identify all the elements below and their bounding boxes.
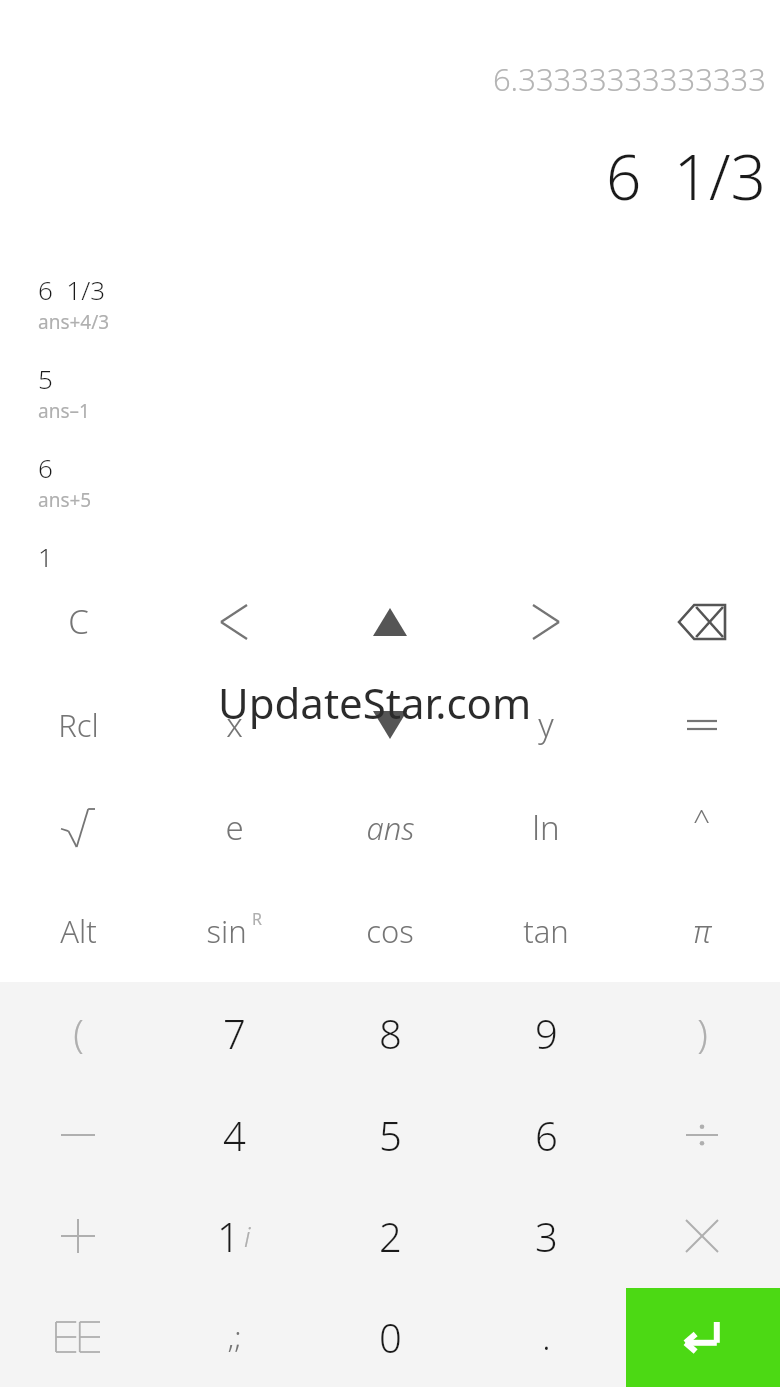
staticText: i bbox=[244, 1217, 251, 1255]
button[interactable]: e bbox=[156, 776, 312, 879]
button[interactable]: 8 bbox=[312, 982, 468, 1084]
button[interactable]: 0 bbox=[312, 1286, 468, 1387]
button[interactable]: cos bbox=[312, 879, 468, 982]
button[interactable]: 7 bbox=[156, 982, 312, 1084]
button[interactable]: Open parenthesis bbox=[0, 982, 156, 1084]
button[interactable]: Close parenthesis bbox=[624, 982, 780, 1084]
staticText: ( bbox=[73, 1007, 84, 1059]
button[interactable]: Plus bbox=[0, 1185, 156, 1286]
button[interactable]: π bbox=[624, 879, 780, 982]
staticText: 6 bbox=[38, 450, 53, 485]
staticText: 2 bbox=[379, 1209, 402, 1263]
staticText: 6.33333333333333 bbox=[492, 58, 766, 100]
staticText: ln bbox=[532, 805, 560, 850]
button[interactable]: Scroll up bbox=[312, 570, 468, 673]
staticText: y bbox=[538, 702, 554, 747]
button[interactable]: Multiply bbox=[624, 1185, 780, 1286]
button[interactable]: 5 bbox=[312, 1084, 468, 1185]
button[interactable]: Scroll down bbox=[312, 673, 468, 776]
staticText: ) bbox=[697, 1007, 708, 1059]
button[interactable]: Enter bbox=[626, 1288, 780, 1387]
staticText: 4 bbox=[223, 1108, 246, 1162]
button[interactable]: 3 bbox=[468, 1185, 624, 1286]
staticText: 6 bbox=[535, 1108, 558, 1162]
button[interactable]: y bbox=[468, 673, 624, 776]
staticText: ans bbox=[366, 807, 415, 849]
button[interactable]: ans bbox=[312, 776, 468, 879]
button[interactable]: 6 bbox=[0, 450, 780, 513]
staticText: ans–1 bbox=[38, 398, 90, 424]
staticText: 8 bbox=[379, 1006, 402, 1060]
button[interactable]: 4 bbox=[156, 1084, 312, 1185]
button[interactable]: Clear bbox=[0, 570, 156, 673]
button[interactable]: 9 bbox=[468, 982, 624, 1084]
button[interactable]: Exponent bbox=[0, 1286, 156, 1387]
staticText: 3 bbox=[535, 1209, 558, 1263]
button[interactable]: Minus bbox=[0, 1084, 156, 1185]
staticText: ans+4/3 bbox=[38, 309, 110, 335]
button[interactable]: Power bbox=[624, 776, 780, 879]
staticText: ^ bbox=[693, 799, 711, 840]
button[interactable]: 6 1/3 bbox=[0, 272, 780, 335]
staticText: e bbox=[225, 805, 244, 850]
staticText: 9 bbox=[535, 1006, 558, 1060]
staticText: 6 1/3 bbox=[606, 134, 766, 218]
staticText: . bbox=[542, 1314, 551, 1360]
staticText: cos bbox=[366, 910, 414, 952]
staticText: 7 bbox=[223, 1006, 246, 1060]
button[interactable]: sin bbox=[156, 879, 312, 982]
button[interactable]: 2 bbox=[312, 1185, 468, 1286]
staticText: 1 bbox=[217, 1209, 240, 1263]
button[interactable]: tan bbox=[468, 879, 624, 982]
button[interactable]: Backspace bbox=[624, 570, 780, 673]
staticText: 5 bbox=[379, 1108, 402, 1162]
button[interactable]: 1 bbox=[0, 539, 780, 570]
staticText: Rcl bbox=[58, 704, 99, 746]
staticText: UpdateStar.com bbox=[218, 674, 532, 731]
button[interactable]: Equals bbox=[624, 673, 780, 776]
staticText: 1 bbox=[38, 539, 53, 570]
button[interactable]: 5 bbox=[0, 361, 780, 424]
button[interactable]: 6 bbox=[468, 1084, 624, 1185]
staticText: tan bbox=[523, 910, 569, 952]
staticText: 0 bbox=[379, 1310, 402, 1364]
button[interactable]: Decimal point bbox=[468, 1286, 624, 1387]
staticText: 6 1/3 bbox=[38, 272, 106, 307]
button[interactable]: Alt bbox=[0, 879, 156, 982]
button[interactable]: Divide bbox=[624, 1084, 780, 1185]
staticText: ans+5 bbox=[38, 487, 92, 513]
button[interactable]: ,; bbox=[156, 1286, 312, 1387]
staticText: sin bbox=[206, 910, 247, 952]
button[interactable]: Recall bbox=[0, 673, 156, 776]
button[interactable]: Move right bbox=[468, 570, 624, 673]
button[interactable]: ln bbox=[468, 776, 624, 879]
staticText: x bbox=[226, 702, 243, 747]
staticText: π bbox=[693, 910, 711, 952]
button[interactable]: Move left bbox=[156, 570, 312, 673]
staticText: C bbox=[68, 599, 89, 644]
staticText: ,; bbox=[227, 1316, 242, 1357]
staticText: Alt bbox=[60, 910, 97, 952]
button[interactable]: Square root bbox=[0, 776, 156, 879]
button[interactable]: 1 bbox=[156, 1185, 312, 1286]
staticText: R bbox=[252, 908, 262, 930]
staticText: 5 bbox=[38, 361, 53, 396]
button[interactable]: x bbox=[156, 673, 312, 776]
